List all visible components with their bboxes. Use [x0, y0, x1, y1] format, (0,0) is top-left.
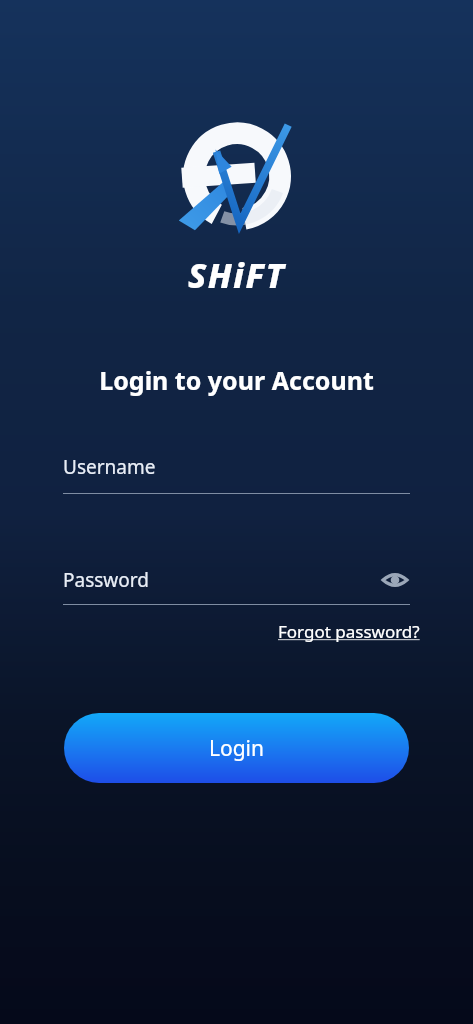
button[interactable]: Show password	[380, 565, 410, 595]
staticText: Forgot password?	[278, 620, 420, 643]
staticText: Username	[63, 454, 156, 480]
staticText: Login to your Account	[99, 363, 374, 397]
button[interactable]: Login	[64, 713, 409, 783]
staticText: SHiFT	[188, 252, 286, 298]
staticText: Login	[209, 734, 265, 763]
button[interactable]: Forgot password?	[278, 618, 420, 645]
button[interactable]: Password	[63, 565, 410, 595]
staticText: Password	[63, 567, 149, 593]
button[interactable]: Username	[63, 454, 410, 494]
